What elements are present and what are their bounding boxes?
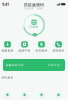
staticText: 便民服务 [1,76,13,79]
staticText: 有效 [34,34,36,36]
button[interactable]: Service [50,92,67,98]
staticText: 核酸检测 [1,49,13,52]
staticText: 查看详情 › [48,63,62,67]
staticText: 健康申报 [18,49,30,52]
staticText: 9:41 [2,1,9,7]
button[interactable]: Service [16,92,33,98]
staticText: 杭州市 · 绿码 [25,6,43,10]
staticText: 疫苗接种 [35,49,47,52]
button[interactable]: 就医服务 [50,41,67,52]
staticText: 核酸采样记录 [6,63,24,67]
staticText: 就医服务 [52,49,64,52]
staticText: 防疫健康码 [24,2,44,7]
button[interactable]: 健康申报 [16,41,33,52]
button[interactable]: 核酸采样记录 [3,59,65,71]
button[interactable]: Service [0,92,16,98]
button[interactable]: Service [33,92,50,98]
staticText: 已接种 [29,25,38,28]
button[interactable]: 核酸检测 [0,41,16,52]
button[interactable]: 疫苗接种 [33,41,50,52]
